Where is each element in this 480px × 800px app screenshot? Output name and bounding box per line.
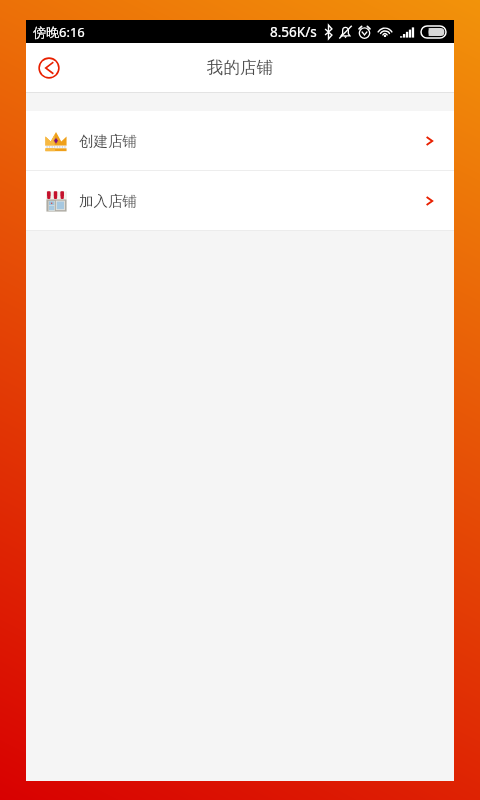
button[interactable]: Back (29, 48, 69, 88)
staticText: 傍晚6:16 (33, 23, 85, 41)
button[interactable]: 创建店铺 (26, 111, 454, 170)
staticText: 加入店铺 (79, 192, 137, 210)
button[interactable]: 加入店铺 (26, 171, 454, 230)
staticText: 创建店铺 (79, 132, 137, 150)
staticText: 8.56K/s (270, 23, 317, 41)
staticText: 我的店铺 (207, 57, 273, 78)
